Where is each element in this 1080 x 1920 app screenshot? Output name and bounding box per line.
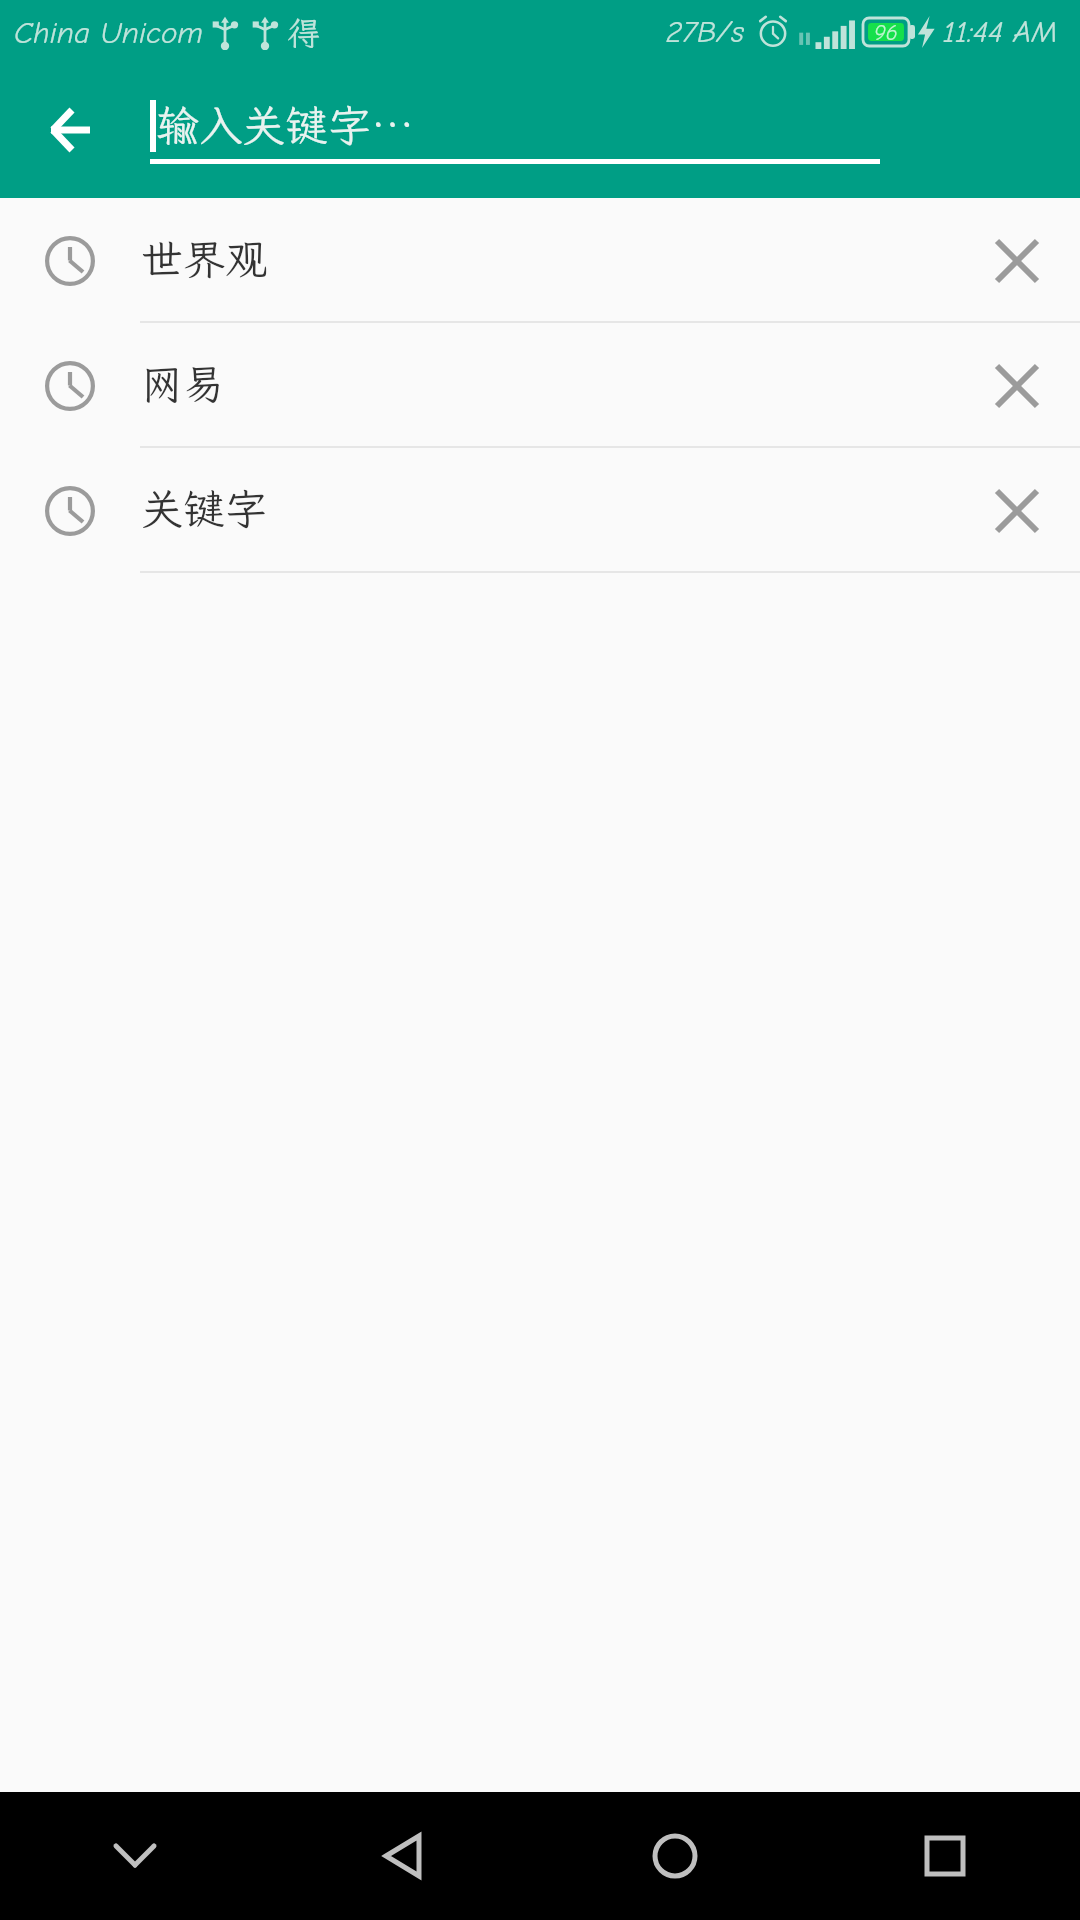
- staticText: 世界观: [141, 231, 268, 286]
- button[interactable]: Delete: [982, 476, 1052, 546]
- staticText: 27B/s: [666, 14, 745, 50]
- button[interactable]: Back: [270, 1792, 540, 1920]
- staticText: 关键字: [141, 481, 268, 536]
- button[interactable]: Back: [22, 90, 118, 170]
- button[interactable]: Home: [540, 1792, 810, 1920]
- button[interactable]: 关键字: [0, 448, 1080, 573]
- button[interactable]: Delete: [982, 226, 1052, 296]
- button[interactable]: 世界观: [0, 198, 1080, 323]
- button[interactable]: Recents: [810, 1792, 1080, 1920]
- staticText: China Unicom: [14, 15, 203, 51]
- staticText: 输入关键字…: [156, 97, 414, 154]
- button[interactable]: 网易: [0, 323, 1080, 448]
- staticText: 11:44 AM: [943, 14, 1058, 50]
- button[interactable]: Delete: [982, 351, 1052, 421]
- staticText: 得: [287, 11, 320, 54]
- staticText: 96: [874, 20, 898, 45]
- staticText: 网易: [141, 356, 226, 411]
- button[interactable]: Hide keyboard: [0, 1792, 270, 1920]
